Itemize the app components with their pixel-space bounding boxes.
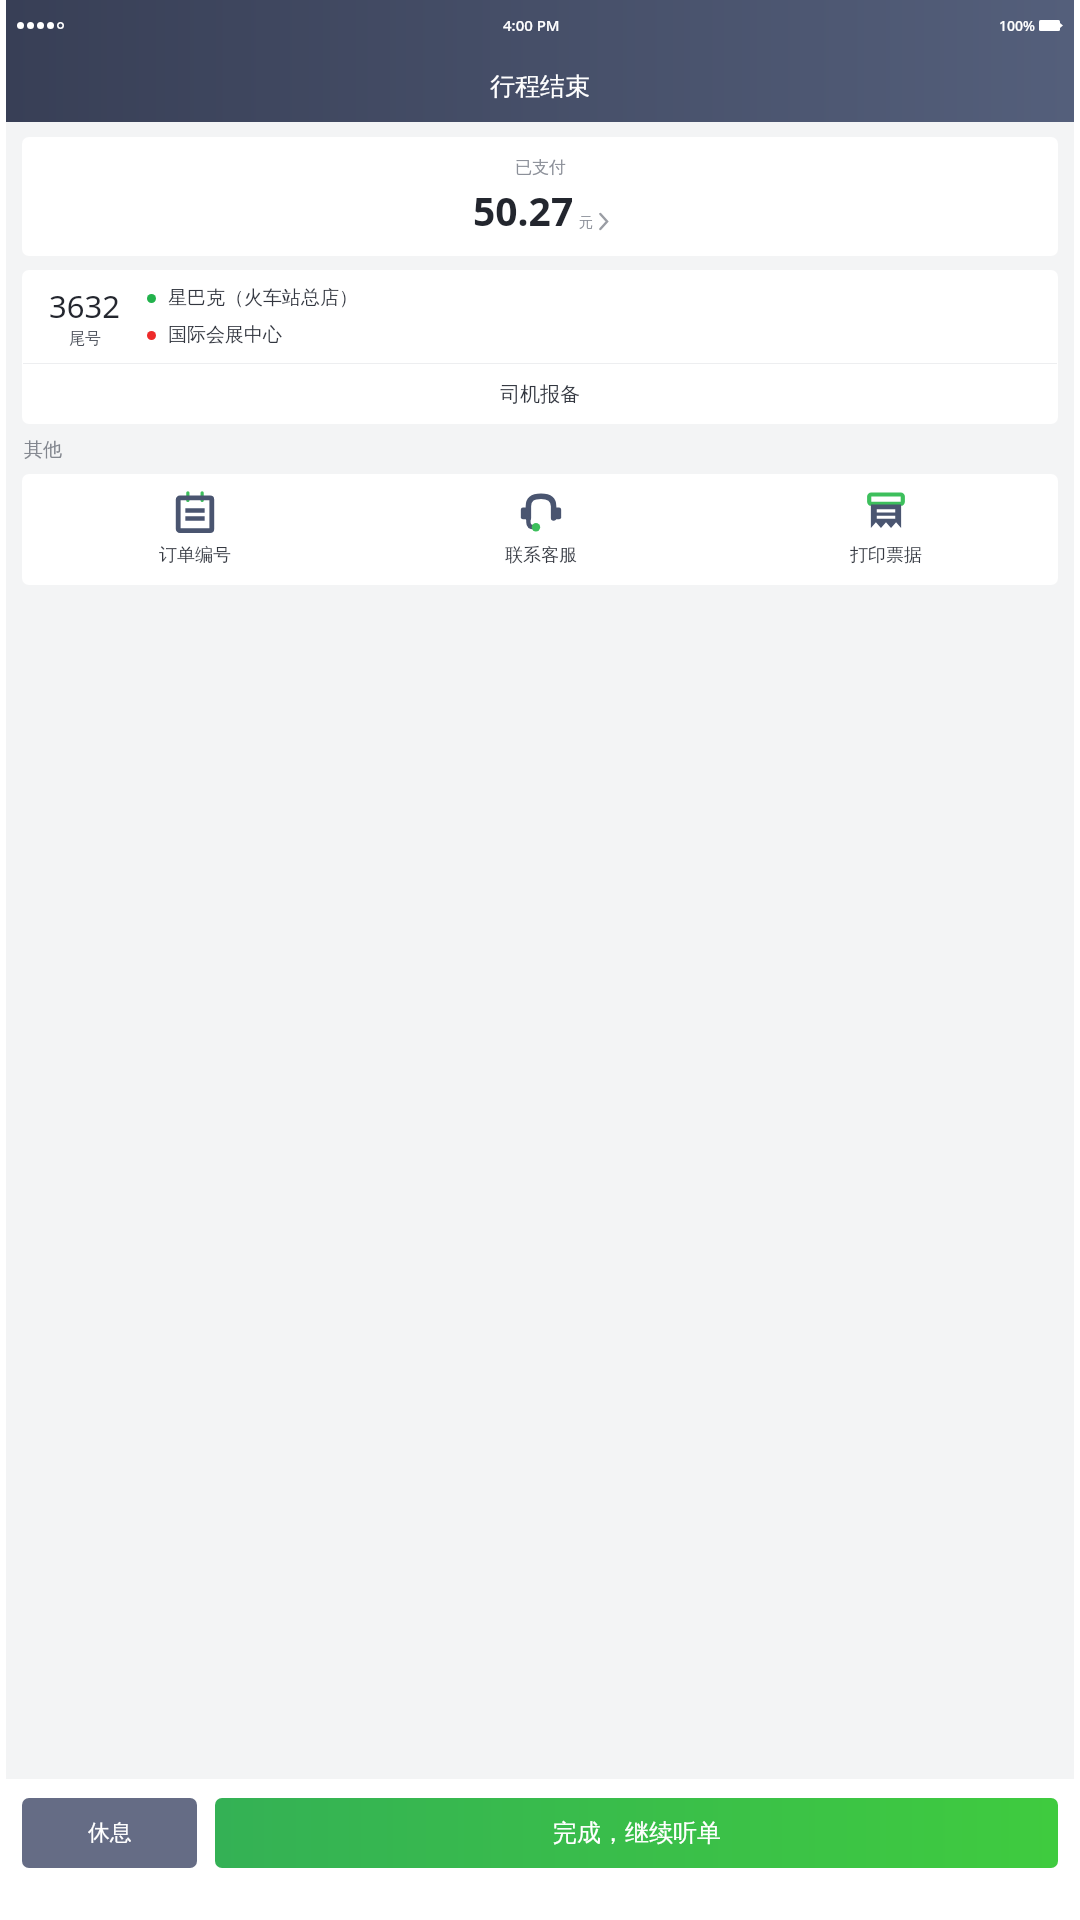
staticText: 国际会展中心 — [168, 323, 282, 347]
staticText: 联系客服 — [505, 544, 577, 567]
button[interactable]: 完成，继续听单 — [215, 1798, 1058, 1868]
staticText: 已支付 — [515, 157, 566, 178]
staticText: 其他 — [24, 438, 62, 462]
staticText: 3632 — [49, 285, 120, 327]
button[interactable]: 订单编号 — [22, 474, 368, 585]
staticText: 行程结束 — [490, 71, 590, 102]
button[interactable]: 联系客服 — [368, 474, 713, 585]
staticText: 打印票据 — [850, 544, 922, 567]
staticText: 休息 — [88, 1819, 132, 1847]
staticText: 尾号 — [69, 329, 101, 349]
button[interactable]: 已支付 — [22, 137, 1058, 256]
staticText: 元 — [579, 214, 593, 232]
staticText: 100% — [999, 16, 1035, 35]
staticText: 星巴克（火车站总店） — [168, 286, 358, 310]
staticText: 完成，继续听单 — [553, 1818, 721, 1848]
button[interactable]: 司机报备 — [22, 364, 1058, 424]
staticText: 4:00 PM — [503, 15, 560, 35]
staticText: 司机报备 — [500, 382, 580, 407]
staticText: 订单编号 — [159, 544, 231, 567]
button[interactable]: 打印票据 — [713, 474, 1058, 585]
button[interactable]: 休息 — [22, 1798, 197, 1868]
staticText: 50.27 — [473, 184, 574, 237]
button[interactable]: 3632 — [22, 270, 1058, 363]
